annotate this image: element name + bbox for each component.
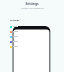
button[interactable] <box>8 34 31 39</box>
button[interactable] <box>8 44 31 49</box>
button[interactable] <box>8 39 31 44</box>
button[interactable] <box>8 24 31 29</box>
staticText: Settings <box>10 19 20 22</box>
button[interactable] <box>8 29 31 34</box>
staticText: Settings <box>25 2 39 6</box>
staticText: Manage your preferences <box>21 7 44 10</box>
